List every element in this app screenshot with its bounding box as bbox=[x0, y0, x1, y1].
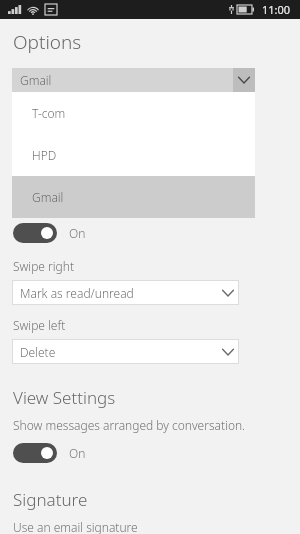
staticText: Gmail bbox=[32, 189, 64, 205]
staticText: On bbox=[69, 225, 86, 241]
staticText: Show messages arranged by conversation. bbox=[13, 417, 246, 433]
staticText: Gmail bbox=[20, 72, 233, 88]
button[interactable]: HPD bbox=[12, 134, 255, 176]
staticText: View Settings bbox=[13, 386, 116, 409]
staticText: Swipe right bbox=[13, 258, 75, 274]
button[interactable]: On bbox=[13, 222, 86, 244]
staticText: Signature bbox=[13, 488, 88, 511]
staticText: HPD bbox=[32, 147, 57, 163]
button[interactable]: T-com bbox=[12, 92, 255, 134]
button[interactable]: Delete bbox=[12, 339, 239, 364]
staticText: On bbox=[69, 445, 86, 461]
button[interactable]: On bbox=[13, 442, 86, 464]
staticText: Use an email signature bbox=[13, 519, 138, 534]
staticText: T-com bbox=[32, 105, 66, 121]
staticText: Swipe left bbox=[13, 317, 66, 333]
button[interactable]: Gmail bbox=[12, 68, 255, 92]
staticText: Mark as read/unread bbox=[20, 285, 217, 301]
staticText: 11:00 bbox=[261, 2, 290, 17]
staticText: Options bbox=[13, 29, 82, 55]
button[interactable]: Mark as read/unread bbox=[12, 280, 239, 305]
button[interactable]: Gmail bbox=[12, 176, 255, 218]
staticText: Delete bbox=[20, 344, 217, 360]
